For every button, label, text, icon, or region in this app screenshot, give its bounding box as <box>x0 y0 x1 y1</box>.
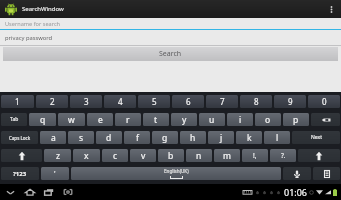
button[interactable]: Voice input <box>283 167 311 180</box>
button[interactable]: 6 <box>172 95 204 108</box>
button[interactable]: 4 <box>104 95 136 108</box>
button[interactable]: p <box>283 113 309 126</box>
button[interactable]: y <box>171 113 197 126</box>
staticText: 9 <box>288 96 293 107</box>
button[interactable]: u <box>199 113 225 126</box>
staticText: 8 <box>254 96 259 107</box>
button[interactable]: Keyboard options <box>313 167 340 180</box>
staticText: 0 <box>322 96 327 107</box>
button[interactable]: ?. <box>270 149 296 162</box>
staticText: g <box>162 132 168 144</box>
staticText: f <box>136 132 139 144</box>
button[interactable]: h <box>180 131 206 144</box>
button[interactable]: s <box>68 131 94 144</box>
button[interactable]: n <box>186 149 212 162</box>
staticText: d <box>106 132 112 144</box>
button[interactable]: 1 <box>1 95 34 108</box>
button[interactable]: k <box>236 131 262 144</box>
staticText: e <box>98 114 103 126</box>
staticText: 7 <box>220 96 225 107</box>
button[interactable]: Screenshot <box>58 184 77 200</box>
staticText: c <box>113 150 118 162</box>
staticText: Username for search <box>5 20 61 28</box>
staticText: 01:06 <box>284 186 308 198</box>
staticText: q <box>40 114 46 126</box>
button[interactable]: d <box>96 131 122 144</box>
staticText: b <box>168 150 174 162</box>
button[interactable]: Caps Lock <box>1 131 38 144</box>
button[interactable]: 5 <box>138 95 170 108</box>
button[interactable]: ' <box>41 167 69 180</box>
button[interactable]: 2 <box>36 95 68 108</box>
staticText: 2 <box>50 96 55 107</box>
button[interactable]: 0 <box>308 95 340 108</box>
button[interactable]: a <box>40 131 66 144</box>
button[interactable]: 7 <box>206 95 238 108</box>
button[interactable]: e <box>87 113 113 126</box>
button[interactable]: Space <box>71 167 281 180</box>
staticText: u <box>209 114 215 126</box>
button[interactable]: Home <box>20 184 39 200</box>
button[interactable]: More options <box>325 0 337 18</box>
button[interactable]: Backspace <box>311 113 340 126</box>
staticText: SearchWindow <box>22 5 64 13</box>
staticText: r <box>126 114 130 126</box>
button[interactable]: Hide keyboard <box>1 184 20 200</box>
staticText: 6 <box>186 96 191 107</box>
staticText: v <box>141 150 146 162</box>
staticText: privacy password <box>5 34 53 42</box>
staticText: s <box>79 132 84 144</box>
staticText: z <box>56 150 60 162</box>
staticText: y <box>182 114 187 126</box>
staticText: l <box>276 132 279 144</box>
staticText: Next <box>311 134 322 141</box>
button[interactable]: b <box>158 149 184 162</box>
button[interactable]: v <box>130 149 156 162</box>
button[interactable]: w <box>58 113 85 126</box>
button[interactable]: 3 <box>70 95 102 108</box>
button[interactable]: ?123 <box>1 167 39 180</box>
staticText: t <box>154 114 158 126</box>
staticText: Tab <box>10 116 19 123</box>
staticText: i <box>239 114 242 126</box>
button[interactable]: Shift <box>298 149 340 162</box>
button[interactable]: i <box>227 113 253 126</box>
button[interactable]: o <box>255 113 281 126</box>
staticText: ?123 <box>13 170 27 178</box>
button[interactable]: x <box>73 149 100 162</box>
button[interactable]: q <box>29 113 56 126</box>
button[interactable]: Recent apps <box>39 184 58 200</box>
staticText: j <box>220 132 223 144</box>
staticText: 3 <box>84 96 89 107</box>
staticText: m <box>223 150 231 162</box>
staticText: 5 <box>152 96 157 107</box>
button[interactable]: l <box>264 131 290 144</box>
button[interactable]: f <box>124 131 150 144</box>
staticText: ?. <box>281 151 286 160</box>
button[interactable]: Shift <box>1 149 42 162</box>
button[interactable]: Search <box>3 47 338 61</box>
button[interactable]: m <box>214 149 240 162</box>
button[interactable]: c <box>102 149 128 162</box>
button[interactable]: r <box>115 113 141 126</box>
button[interactable]: 8 <box>240 95 272 108</box>
staticText: 4 <box>118 96 123 107</box>
staticText: x <box>84 150 89 162</box>
staticText: k <box>247 132 252 144</box>
staticText: 1 <box>15 96 20 107</box>
staticText: !, <box>253 151 257 160</box>
staticText: Caps Lock <box>9 135 31 141</box>
button[interactable]: Tab <box>1 113 27 126</box>
button[interactable]: z <box>44 149 71 162</box>
button[interactable]: !, <box>242 149 268 162</box>
staticText: Search <box>159 49 182 59</box>
staticText: w <box>68 114 75 126</box>
button[interactable]: t <box>143 113 169 126</box>
button[interactable]: 9 <box>274 95 306 108</box>
button[interactable]: Next <box>292 131 340 144</box>
staticText: h <box>190 132 196 144</box>
button[interactable]: j <box>208 131 234 144</box>
staticText: p <box>293 114 299 126</box>
staticText: English(UK) <box>164 168 189 174</box>
button[interactable]: g <box>152 131 178 144</box>
